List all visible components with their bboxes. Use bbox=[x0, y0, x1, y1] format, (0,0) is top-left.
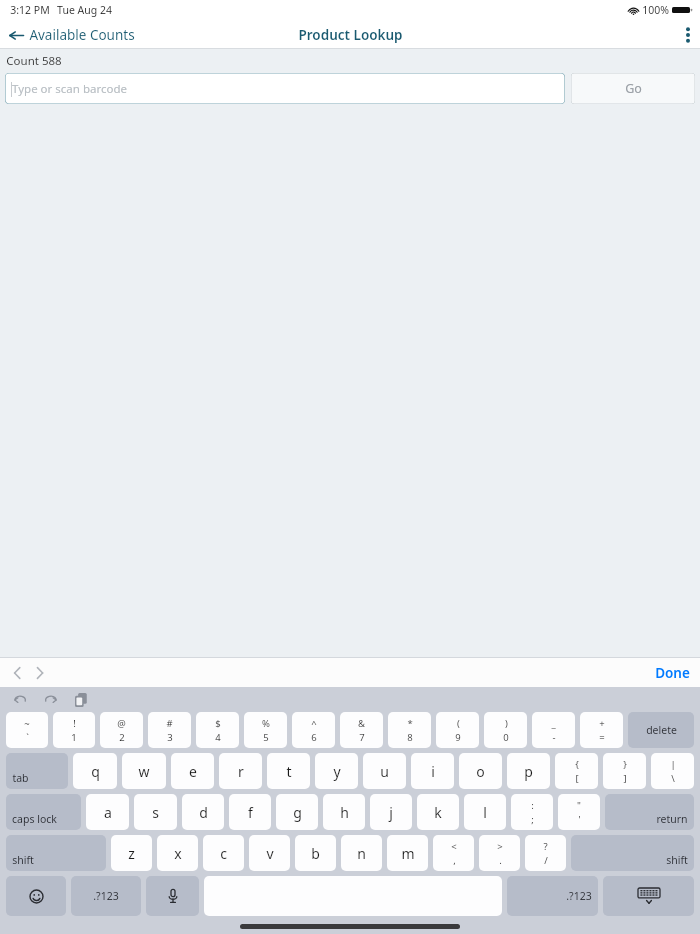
staticText: a bbox=[104, 803, 112, 822]
button[interactable]: Done bbox=[645, 660, 700, 686]
staticText: { bbox=[575, 758, 579, 771]
button[interactable]: z bbox=[111, 835, 152, 871]
button[interactable]: % bbox=[244, 712, 287, 748]
button[interactable]: & bbox=[340, 712, 383, 748]
staticText: , bbox=[453, 854, 456, 867]
button[interactable]: # bbox=[148, 712, 191, 748]
staticText: Go bbox=[625, 80, 642, 97]
button[interactable]: ? bbox=[525, 835, 566, 871]
button[interactable]: s bbox=[134, 794, 177, 830]
button[interactable]: e bbox=[171, 753, 214, 789]
button[interactable]: f bbox=[229, 794, 271, 830]
button[interactable]: Previous field bbox=[8, 661, 26, 685]
button[interactable]: * bbox=[388, 712, 431, 748]
staticText: 3 bbox=[167, 731, 173, 744]
button[interactable]: u bbox=[363, 753, 406, 789]
button[interactable]: ^ bbox=[292, 712, 335, 748]
staticText: i bbox=[431, 762, 435, 781]
button[interactable]: d bbox=[182, 794, 224, 830]
button[interactable]: shift bbox=[6, 835, 106, 871]
button[interactable]: ! bbox=[53, 712, 95, 748]
button[interactable]: o bbox=[459, 753, 502, 789]
button[interactable]: .?123 bbox=[71, 876, 141, 916]
button[interactable]: b bbox=[295, 835, 336, 871]
button[interactable]: Dictation bbox=[146, 876, 199, 916]
button[interactable]: More options bbox=[676, 23, 700, 47]
staticText: .?123 bbox=[93, 889, 119, 903]
staticText: ; bbox=[531, 813, 534, 826]
button[interactable]: Type or scan barcode bbox=[5, 73, 565, 104]
button[interactable]: @ bbox=[100, 712, 143, 748]
button[interactable]: { bbox=[555, 753, 598, 789]
button[interactable]: t bbox=[267, 753, 310, 789]
button[interactable]: : bbox=[511, 794, 553, 830]
staticText: | bbox=[670, 758, 676, 771]
staticText: tab bbox=[12, 771, 29, 785]
button[interactable]: " bbox=[558, 794, 600, 830]
button[interactable]: caps lock bbox=[6, 794, 81, 830]
button[interactable]: < bbox=[433, 835, 474, 871]
button[interactable]: h bbox=[323, 794, 365, 830]
staticText: .?123 bbox=[566, 889, 592, 903]
button[interactable]: ~ bbox=[6, 712, 48, 748]
button[interactable]: $ bbox=[196, 712, 239, 748]
button[interactable]: p bbox=[507, 753, 550, 789]
staticText: Product Lookup bbox=[298, 26, 403, 44]
button[interactable]: v bbox=[249, 835, 290, 871]
staticText: _ bbox=[551, 717, 556, 730]
button[interactable]: i bbox=[411, 753, 454, 789]
button[interactable]: ( bbox=[436, 712, 479, 748]
button[interactable]: m bbox=[387, 835, 428, 871]
staticText: v bbox=[266, 844, 274, 863]
button[interactable]: c bbox=[203, 835, 244, 871]
button[interactable]: Next field bbox=[31, 661, 49, 685]
button[interactable]: j bbox=[370, 794, 412, 830]
staticText: & bbox=[358, 717, 365, 730]
button[interactable]: return bbox=[605, 794, 694, 830]
button[interactable]: x bbox=[157, 835, 198, 871]
button[interactable]: w bbox=[122, 753, 166, 789]
button[interactable]: y bbox=[315, 753, 358, 789]
button[interactable]: Emoji bbox=[6, 876, 66, 916]
staticText: Tue Aug 24 bbox=[57, 3, 112, 17]
button[interactable]: _ bbox=[532, 712, 575, 748]
button[interactable]: ) bbox=[484, 712, 527, 748]
staticText: 7 bbox=[359, 731, 365, 744]
button[interactable]: Back bbox=[0, 22, 143, 48]
staticText: w bbox=[138, 762, 150, 781]
staticText: u bbox=[380, 762, 389, 781]
button[interactable]: } bbox=[603, 753, 646, 789]
staticText: return bbox=[656, 812, 688, 826]
staticText: > bbox=[497, 840, 503, 853]
button[interactable]: | bbox=[651, 753, 694, 789]
staticText: $ bbox=[215, 717, 221, 730]
button[interactable]: l bbox=[464, 794, 506, 830]
button[interactable]: tab bbox=[6, 753, 68, 789]
button[interactable]: > bbox=[479, 835, 520, 871]
button[interactable]: k bbox=[417, 794, 459, 830]
staticText: q bbox=[91, 762, 100, 781]
button[interactable]: .?123 bbox=[507, 876, 598, 916]
staticText: d bbox=[199, 803, 208, 822]
other: Back bbox=[9, 29, 24, 42]
button[interactable]: n bbox=[341, 835, 382, 871]
button[interactable]: Hide keyboard bbox=[603, 876, 694, 916]
button[interactable]: Paste bbox=[72, 690, 90, 710]
button[interactable]: Undo bbox=[10, 691, 30, 709]
button[interactable]: + bbox=[580, 712, 623, 748]
button[interactable]: Redo bbox=[41, 691, 61, 709]
button[interactable]: g bbox=[276, 794, 318, 830]
staticText: ] bbox=[623, 772, 627, 785]
staticText: Available Counts bbox=[29, 26, 135, 44]
button[interactable]: q bbox=[73, 753, 117, 789]
staticText: z bbox=[128, 844, 135, 863]
button[interactable]: Go bbox=[571, 73, 695, 104]
button[interactable]: shift bbox=[571, 835, 694, 871]
button[interactable]: r bbox=[219, 753, 262, 789]
staticText: ~ bbox=[24, 717, 30, 730]
staticText: 0 bbox=[503, 731, 509, 744]
button[interactable]: delete bbox=[628, 712, 694, 748]
button[interactable]: a bbox=[86, 794, 129, 830]
staticText: o bbox=[476, 762, 485, 781]
